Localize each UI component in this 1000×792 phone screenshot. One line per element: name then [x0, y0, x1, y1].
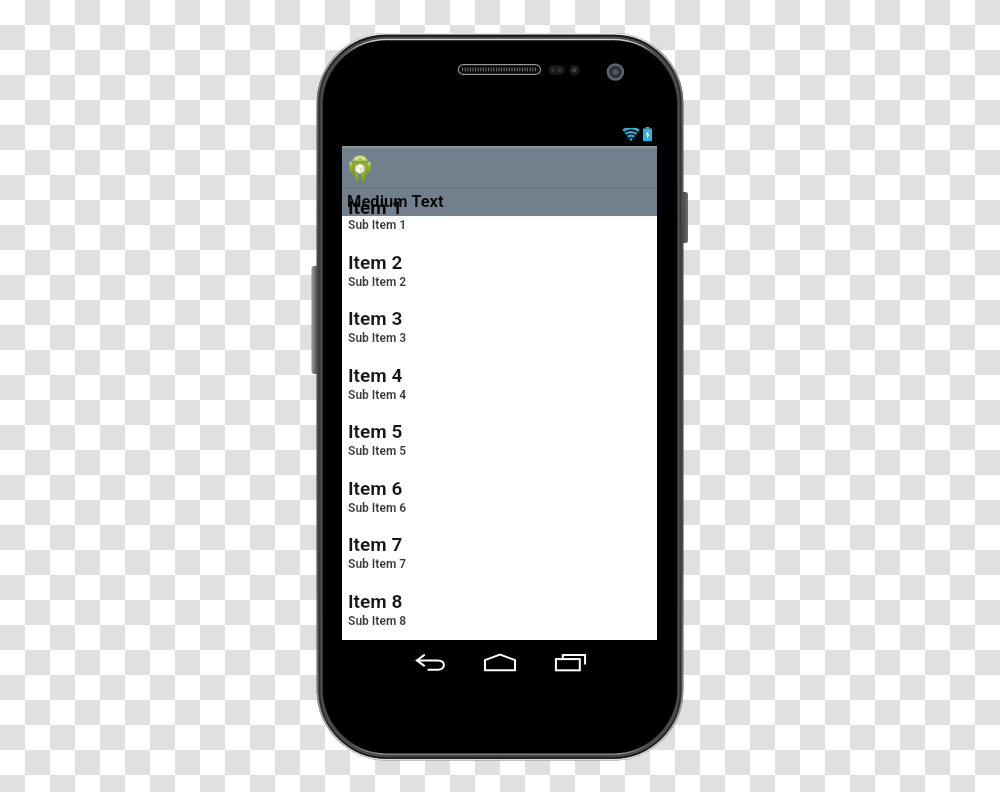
staticText: Sub Item 5	[348, 444, 407, 458]
staticText: Sub Item 2	[348, 275, 407, 289]
staticText: Medium Text	[347, 192, 444, 211]
button[interactable]: Home	[474, 645, 526, 679]
staticText: Item 4	[348, 364, 403, 386]
staticText: Item 1	[348, 196, 403, 218]
staticText: Sub Item 7	[348, 557, 407, 571]
staticText: Item 8	[348, 590, 403, 612]
staticText: Item 6	[348, 477, 403, 499]
staticText: Item 2	[348, 251, 403, 273]
button[interactable]: Sub Item 1	[342, 216, 657, 240]
staticText: Sub Item 8	[348, 614, 407, 628]
staticText: Sub Item 4	[348, 388, 407, 402]
button[interactable]: Item 5	[342, 409, 657, 465]
button[interactable]: Item 7	[342, 522, 657, 578]
staticText: Sub Item 3	[348, 331, 407, 345]
staticText: Sub Item 6	[348, 501, 407, 515]
staticText: Item 7	[348, 533, 403, 555]
button[interactable]: Item 3	[342, 296, 657, 352]
button[interactable]: Item 8	[342, 579, 657, 635]
button[interactable]: Item 6	[342, 466, 657, 522]
button[interactable]: Recent apps	[544, 645, 596, 679]
button[interactable]: Item 2	[342, 240, 657, 296]
staticText: Sub Item 1	[348, 218, 407, 232]
button[interactable]: Back	[404, 645, 456, 679]
button[interactable]: App icon	[349, 153, 371, 181]
staticText: Item 5	[348, 420, 403, 442]
staticText: Item 3	[348, 307, 403, 329]
button[interactable]: Item 4	[342, 353, 657, 409]
